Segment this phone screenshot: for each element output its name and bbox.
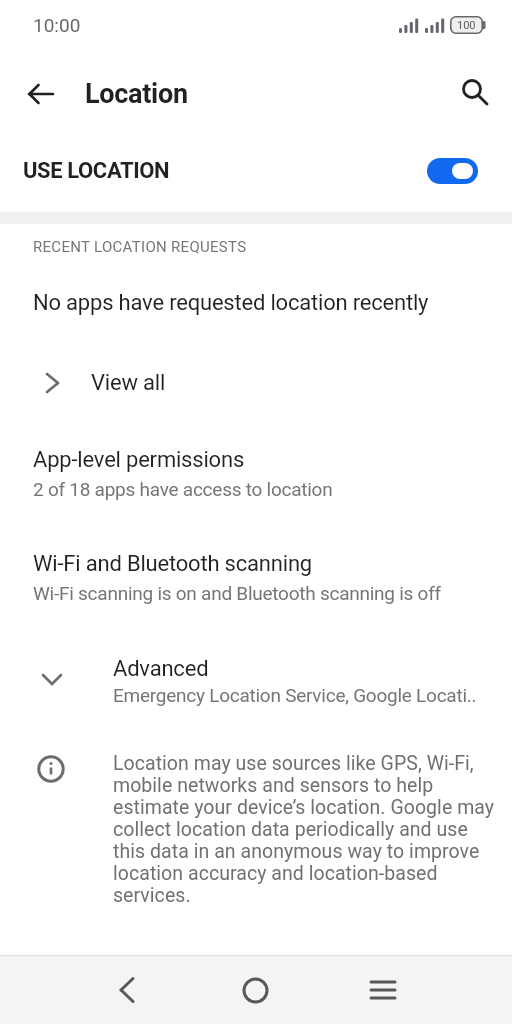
button[interactable]: USE LOCATION: [23, 145, 478, 197]
button[interactable]: App-level permissions: [33, 447, 512, 500]
button[interactable]: [460, 78, 492, 110]
staticText: RECENT LOCATION REQUESTS: [33, 238, 247, 256]
staticText: Emergency Location Service, Google Locat…: [113, 684, 477, 706]
button[interactable]: [87, 956, 167, 1024]
button[interactable]: Wi-Fi and Bluetooth scanning: [33, 551, 512, 604]
button[interactable]: [28, 81, 54, 107]
button[interactable]: [215, 956, 295, 1024]
staticText: No apps have requested location recently: [33, 290, 429, 316]
button[interactable]: View all: [44, 369, 512, 397]
staticText: Advanced: [113, 656, 209, 682]
button[interactable]: [427, 158, 478, 184]
staticText: 2 of 18 apps have access to location: [33, 478, 333, 500]
staticText: Location: [85, 78, 188, 110]
button[interactable]: [343, 956, 423, 1024]
staticText: 10:00: [33, 14, 81, 36]
staticText: Wi-Fi scanning is on and Bluetooth scann…: [33, 582, 441, 604]
staticText: 100: [457, 19, 476, 32]
staticText: Location may use sources like GPS, Wi-Fi…: [113, 752, 495, 907]
staticText: USE LOCATION: [23, 158, 170, 184]
staticText: Wi-Fi and Bluetooth scanning: [33, 551, 312, 577]
button[interactable]: Advanced: [42, 656, 512, 706]
staticText: View all: [91, 370, 166, 396]
staticText: App-level permissions: [33, 447, 245, 473]
